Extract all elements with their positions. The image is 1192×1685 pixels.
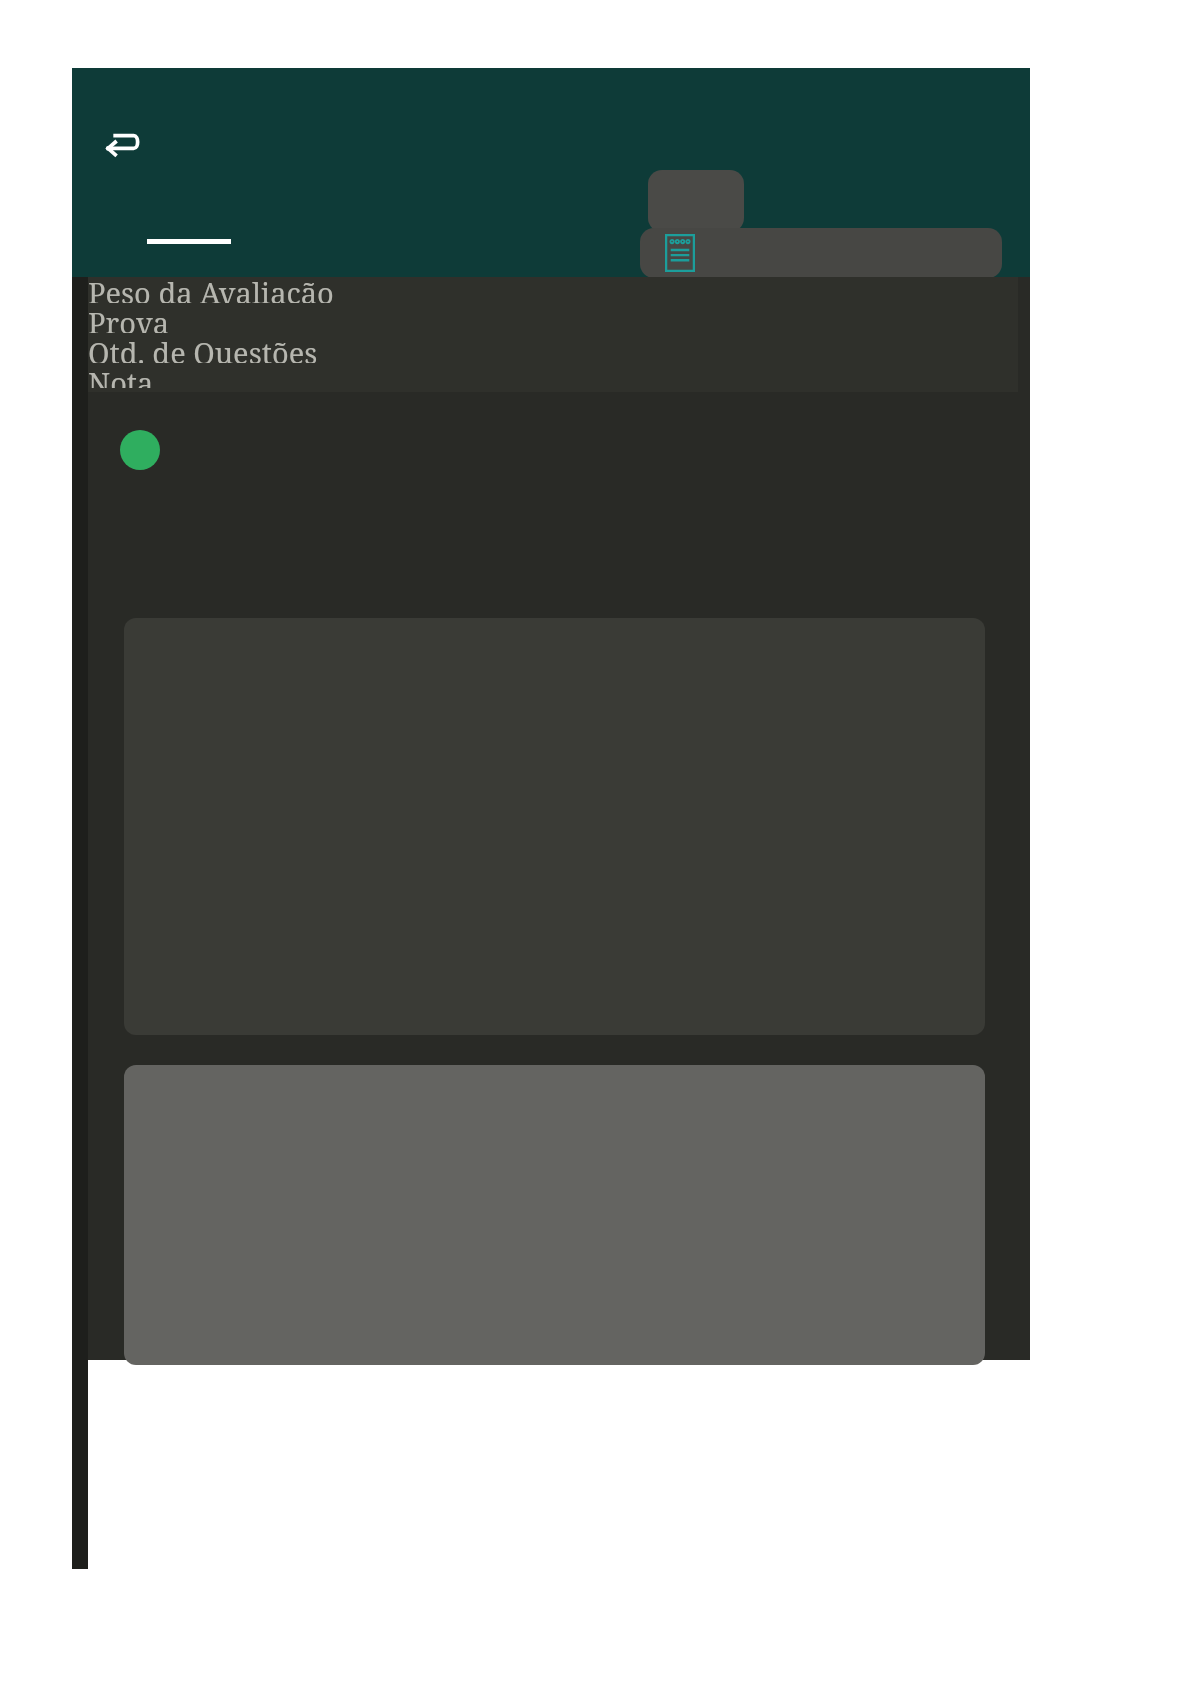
staticText: Nota — [88, 363, 154, 388]
button[interactable]: Prova — [640, 228, 1002, 278]
button[interactable] — [120, 430, 160, 470]
staticText: Qtd. de Questões — [88, 333, 318, 363]
button[interactable]: Voltar — [92, 112, 156, 176]
other: Prova — [665, 234, 695, 272]
staticText: Prova — [88, 303, 170, 333]
staticText: Peso da Avaliação — [88, 273, 334, 303]
button[interactable] — [648, 170, 744, 232]
